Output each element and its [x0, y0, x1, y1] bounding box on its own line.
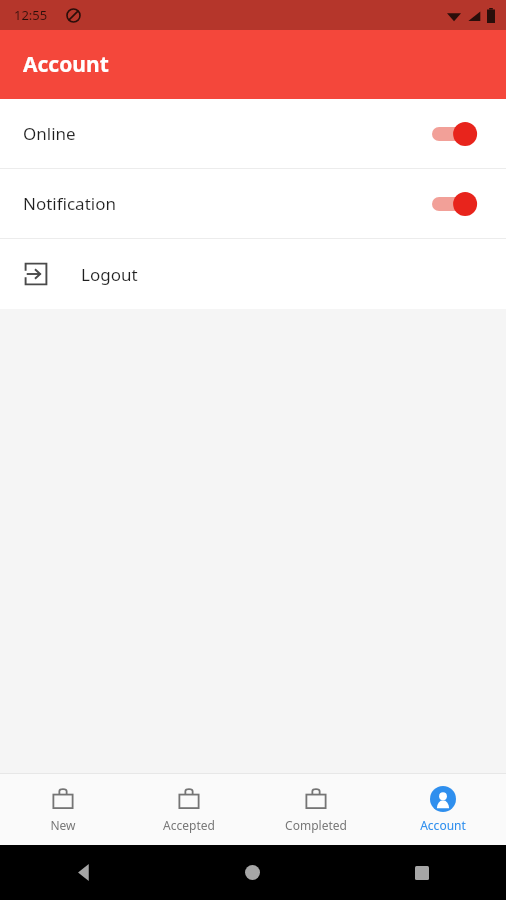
other: Home [245, 865, 260, 880]
staticText: 12:55 [14, 6, 48, 24]
button[interactable]: Toggle [432, 189, 484, 219]
staticText: New [50, 817, 76, 833]
other: Recents [415, 866, 429, 880]
staticText: Online [23, 122, 76, 145]
staticText: Accepted [163, 817, 215, 833]
other: Back [76, 864, 93, 881]
staticText: Account [23, 50, 109, 79]
button[interactable]: Notification [0, 169, 506, 238]
staticText: Completed [285, 817, 347, 833]
button[interactable]: New [0, 774, 126, 845]
button[interactable]: Accepted [126, 774, 252, 845]
button[interactable]: Completed [252, 774, 379, 845]
button[interactable]: Account [379, 774, 506, 845]
staticText: Notification [23, 192, 116, 215]
staticText: Logout [81, 263, 138, 286]
button[interactable]: Toggle [432, 119, 484, 149]
button[interactable]: Online [0, 99, 506, 168]
button[interactable]: Logout [0, 239, 506, 309]
staticText: Account [420, 817, 466, 833]
